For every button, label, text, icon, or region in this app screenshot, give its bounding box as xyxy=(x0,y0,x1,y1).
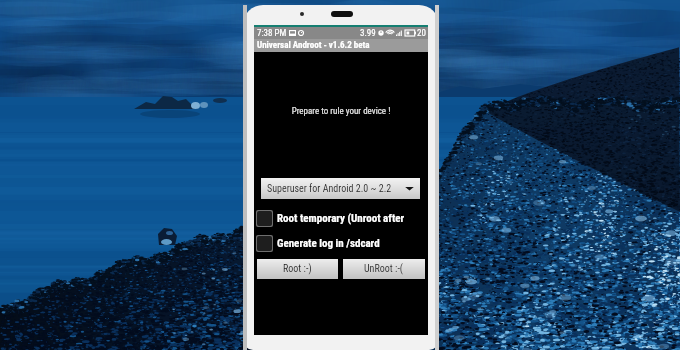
staticText: UnRoot :-( xyxy=(364,263,404,275)
staticText: Root temporary (Unroot after reboot) xyxy=(277,212,428,225)
staticText: Universal Androot - v1.6.2 beta xyxy=(257,40,370,51)
button[interactable]: Root temporary (Unroot after reboot) xyxy=(256,209,428,227)
staticText: 7:38 PM xyxy=(257,28,287,39)
staticText: Superuser for Android 2.0 ~ 2.2 xyxy=(267,183,392,195)
staticText: Generate log in /sdcard xyxy=(277,237,380,250)
staticText: 3.99 xyxy=(360,28,376,39)
staticText: 20 xyxy=(417,28,426,39)
button[interactable]: Root :-) xyxy=(257,259,338,279)
staticText: Prepare to rule your device ! xyxy=(254,106,428,117)
staticText: Root :-) xyxy=(283,263,312,275)
button[interactable]: Superuser for Android 2.0 ~ 2.2 xyxy=(261,178,420,199)
button[interactable]: Generate log in /sdcard xyxy=(256,234,428,252)
button[interactable]: UnRoot :-( xyxy=(343,259,425,279)
